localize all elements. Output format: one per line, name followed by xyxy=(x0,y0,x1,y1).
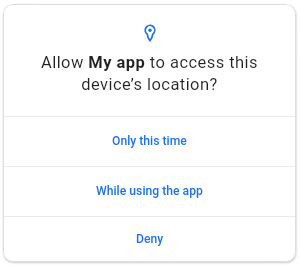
button[interactable]: While using the app xyxy=(3,167,296,216)
staticText: Deny xyxy=(136,232,164,246)
button[interactable]: Deny xyxy=(3,217,296,262)
staticText: Allow My app to access this device’s loc… xyxy=(3,53,296,94)
button[interactable]: Only this time xyxy=(3,117,296,166)
staticText: While using the app xyxy=(96,184,203,198)
staticText: Only this time xyxy=(112,134,187,148)
